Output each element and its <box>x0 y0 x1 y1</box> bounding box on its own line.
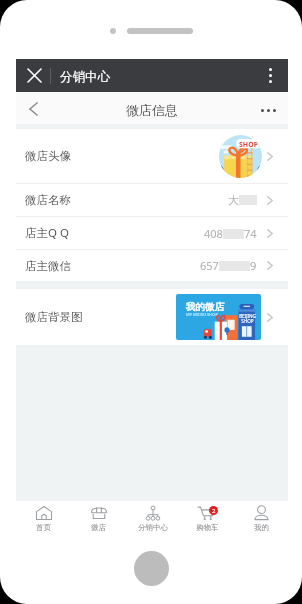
staticText: 购物车 <box>196 523 219 532</box>
button[interactable]: 微店 <box>71 501 126 536</box>
button[interactable]: 2 <box>180 501 234 536</box>
button[interactable]: Menu <box>256 92 288 124</box>
button[interactable]: Home <box>134 551 169 586</box>
button[interactable]: Back <box>16 92 46 124</box>
button[interactable]: Close <box>22 59 46 92</box>
staticText: 店主Q Q <box>25 225 69 241</box>
staticText: 657 <box>200 258 219 273</box>
staticText: 74 <box>244 226 257 241</box>
staticText: 微店名称 <box>25 193 71 207</box>
button[interactable]: 店主微信 <box>16 250 288 281</box>
staticText: SHOP <box>239 140 259 150</box>
staticText: 2 <box>212 507 216 515</box>
button[interactable]: 微店名称 <box>16 184 288 216</box>
staticText: 9 <box>250 258 257 273</box>
staticText: 微店 <box>91 523 106 532</box>
staticText: 微店背景图 <box>25 310 83 324</box>
button[interactable]: 我的 <box>234 501 288 536</box>
staticText: 微店信息 <box>16 102 288 118</box>
button[interactable]: 店主Q Q <box>16 217 288 249</box>
button[interactable]: 首页 <box>16 501 71 536</box>
staticText: 大 <box>228 193 239 207</box>
staticText: 分销中心 <box>60 69 110 85</box>
staticText: 408 <box>204 226 223 241</box>
staticText: 微店头像 <box>25 149 71 163</box>
staticText: MY MICRO SHOP <box>186 312 218 317</box>
staticText: 我的微店 <box>186 301 224 313</box>
button[interactable]: 微店头像 <box>16 129 288 183</box>
staticText: 我的 <box>254 523 269 532</box>
staticText: 店主微信 <box>25 259 71 273</box>
staticText: 首页 <box>36 523 51 532</box>
button[interactable]: More options <box>256 59 288 92</box>
button[interactable]: 微店背景图 <box>16 289 288 345</box>
button[interactable]: 分销中心 <box>126 501 180 536</box>
staticText: BEIJING SHOP <box>239 313 256 325</box>
staticText: 分销中心 <box>138 523 168 532</box>
